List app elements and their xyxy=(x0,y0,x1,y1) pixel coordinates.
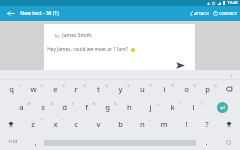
button[interactable]: Backspace xyxy=(218,80,240,98)
staticText: h xyxy=(127,102,132,112)
staticText: 19:48 xyxy=(227,0,238,6)
button[interactable]: m xyxy=(153,115,175,133)
button[interactable]: a xyxy=(10,98,32,116)
button[interactable]: ! xyxy=(175,115,197,133)
button[interactable]: b xyxy=(109,115,131,133)
staticText: 2 xyxy=(40,83,43,88)
staticText: 4 xyxy=(83,83,86,88)
staticText: l xyxy=(192,102,195,112)
button[interactable]: z xyxy=(22,115,44,133)
staticText: ; xyxy=(127,118,129,123)
staticText: 9 xyxy=(193,83,196,88)
staticText: : xyxy=(105,118,107,123)
button[interactable]: n xyxy=(131,115,153,133)
button[interactable]: Enter xyxy=(210,98,234,116)
staticText: o xyxy=(184,84,189,94)
staticText: v xyxy=(96,119,101,129)
staticText: p xyxy=(205,84,210,94)
button[interactable]: c xyxy=(65,115,87,133)
staticText: CONTACT xyxy=(219,11,237,16)
button[interactable]: Space xyxy=(44,133,196,150)
button[interactable]: ATTACH xyxy=(188,6,211,21)
staticText: To: xyxy=(54,33,60,39)
staticText: s xyxy=(41,102,45,112)
button[interactable]: e xyxy=(44,80,66,98)
button[interactable]: q xyxy=(0,80,22,98)
button[interactable]: i xyxy=(153,80,175,98)
staticText: f xyxy=(85,102,88,112)
button[interactable]: w xyxy=(22,80,44,98)
button[interactable]: u xyxy=(131,80,153,98)
staticText: New text - 36 (1) xyxy=(20,10,59,17)
staticText: ' xyxy=(84,118,85,123)
staticText: @ xyxy=(27,101,31,106)
staticText: # xyxy=(50,101,53,106)
button[interactable]: Back xyxy=(2,6,18,21)
button[interactable]: f xyxy=(75,98,97,116)
staticText: m xyxy=(160,119,168,129)
staticText: _ xyxy=(171,118,173,123)
staticText: 0 xyxy=(214,83,217,88)
button[interactable]: t xyxy=(87,80,109,98)
staticText: Hey James, could we meet at 11am? xyxy=(47,46,128,53)
staticText: - xyxy=(136,101,138,106)
staticText: 7 xyxy=(149,83,152,88)
button[interactable]: v xyxy=(87,115,109,133)
staticText: b xyxy=(118,119,123,129)
staticText: % xyxy=(92,101,96,106)
staticText: u xyxy=(140,84,145,94)
staticText: + xyxy=(157,101,160,106)
button[interactable]: p xyxy=(196,80,218,98)
staticText: y xyxy=(118,84,123,94)
staticText: James Smith, xyxy=(62,32,93,39)
staticText: z xyxy=(31,119,35,129)
staticText: j xyxy=(149,102,152,112)
button[interactable]: Send xyxy=(171,58,189,72)
staticText: x xyxy=(53,119,58,129)
button[interactable]: Voice input xyxy=(228,72,234,78)
button[interactable]: x xyxy=(44,115,66,133)
staticText: & xyxy=(114,101,117,106)
button[interactable]: o xyxy=(175,80,197,98)
staticText: d xyxy=(62,102,67,112)
button[interactable]: , xyxy=(26,133,44,150)
staticText: ATTACH xyxy=(194,11,209,16)
button[interactable]: Emoji xyxy=(216,133,240,150)
staticText: , xyxy=(34,137,37,147)
button[interactable]: k xyxy=(161,98,183,116)
staticText: t xyxy=(97,84,100,94)
staticText: n xyxy=(140,119,145,129)
button[interactable]: h xyxy=(118,98,140,116)
staticText: k xyxy=(170,102,175,112)
button[interactable]: d xyxy=(53,98,75,116)
staticText: g xyxy=(105,102,110,112)
button[interactable]: j xyxy=(139,98,161,116)
staticText: i xyxy=(163,84,166,94)
staticText: 1 xyxy=(18,83,21,88)
staticText: ) xyxy=(200,101,202,106)
staticText: 3 xyxy=(62,83,65,88)
staticText: ! xyxy=(185,119,188,129)
button[interactable]: y xyxy=(109,80,131,98)
button[interactable]: g xyxy=(96,98,118,116)
button[interactable]: . xyxy=(196,133,216,150)
button[interactable]: r xyxy=(65,80,87,98)
staticText: . xyxy=(205,137,208,147)
button[interactable]: Backspace xyxy=(218,115,240,133)
staticText: * xyxy=(40,118,43,123)
staticText: 6 xyxy=(127,83,130,88)
button[interactable]: Shift xyxy=(0,115,22,133)
staticText: e xyxy=(53,84,58,94)
button[interactable]: CONTACT xyxy=(211,6,240,21)
button[interactable]: ? xyxy=(196,115,218,133)
staticText: w xyxy=(30,84,37,94)
button[interactable]: ?123 xyxy=(0,133,26,150)
staticText: a xyxy=(19,102,24,112)
button[interactable]: s xyxy=(32,98,54,116)
staticText: ? xyxy=(205,119,209,129)
staticText: ?123 xyxy=(8,139,18,145)
button[interactable]: l xyxy=(182,98,204,116)
staticText: " xyxy=(62,118,64,123)
staticText: 5 xyxy=(105,83,108,88)
staticText: $ xyxy=(71,101,74,106)
